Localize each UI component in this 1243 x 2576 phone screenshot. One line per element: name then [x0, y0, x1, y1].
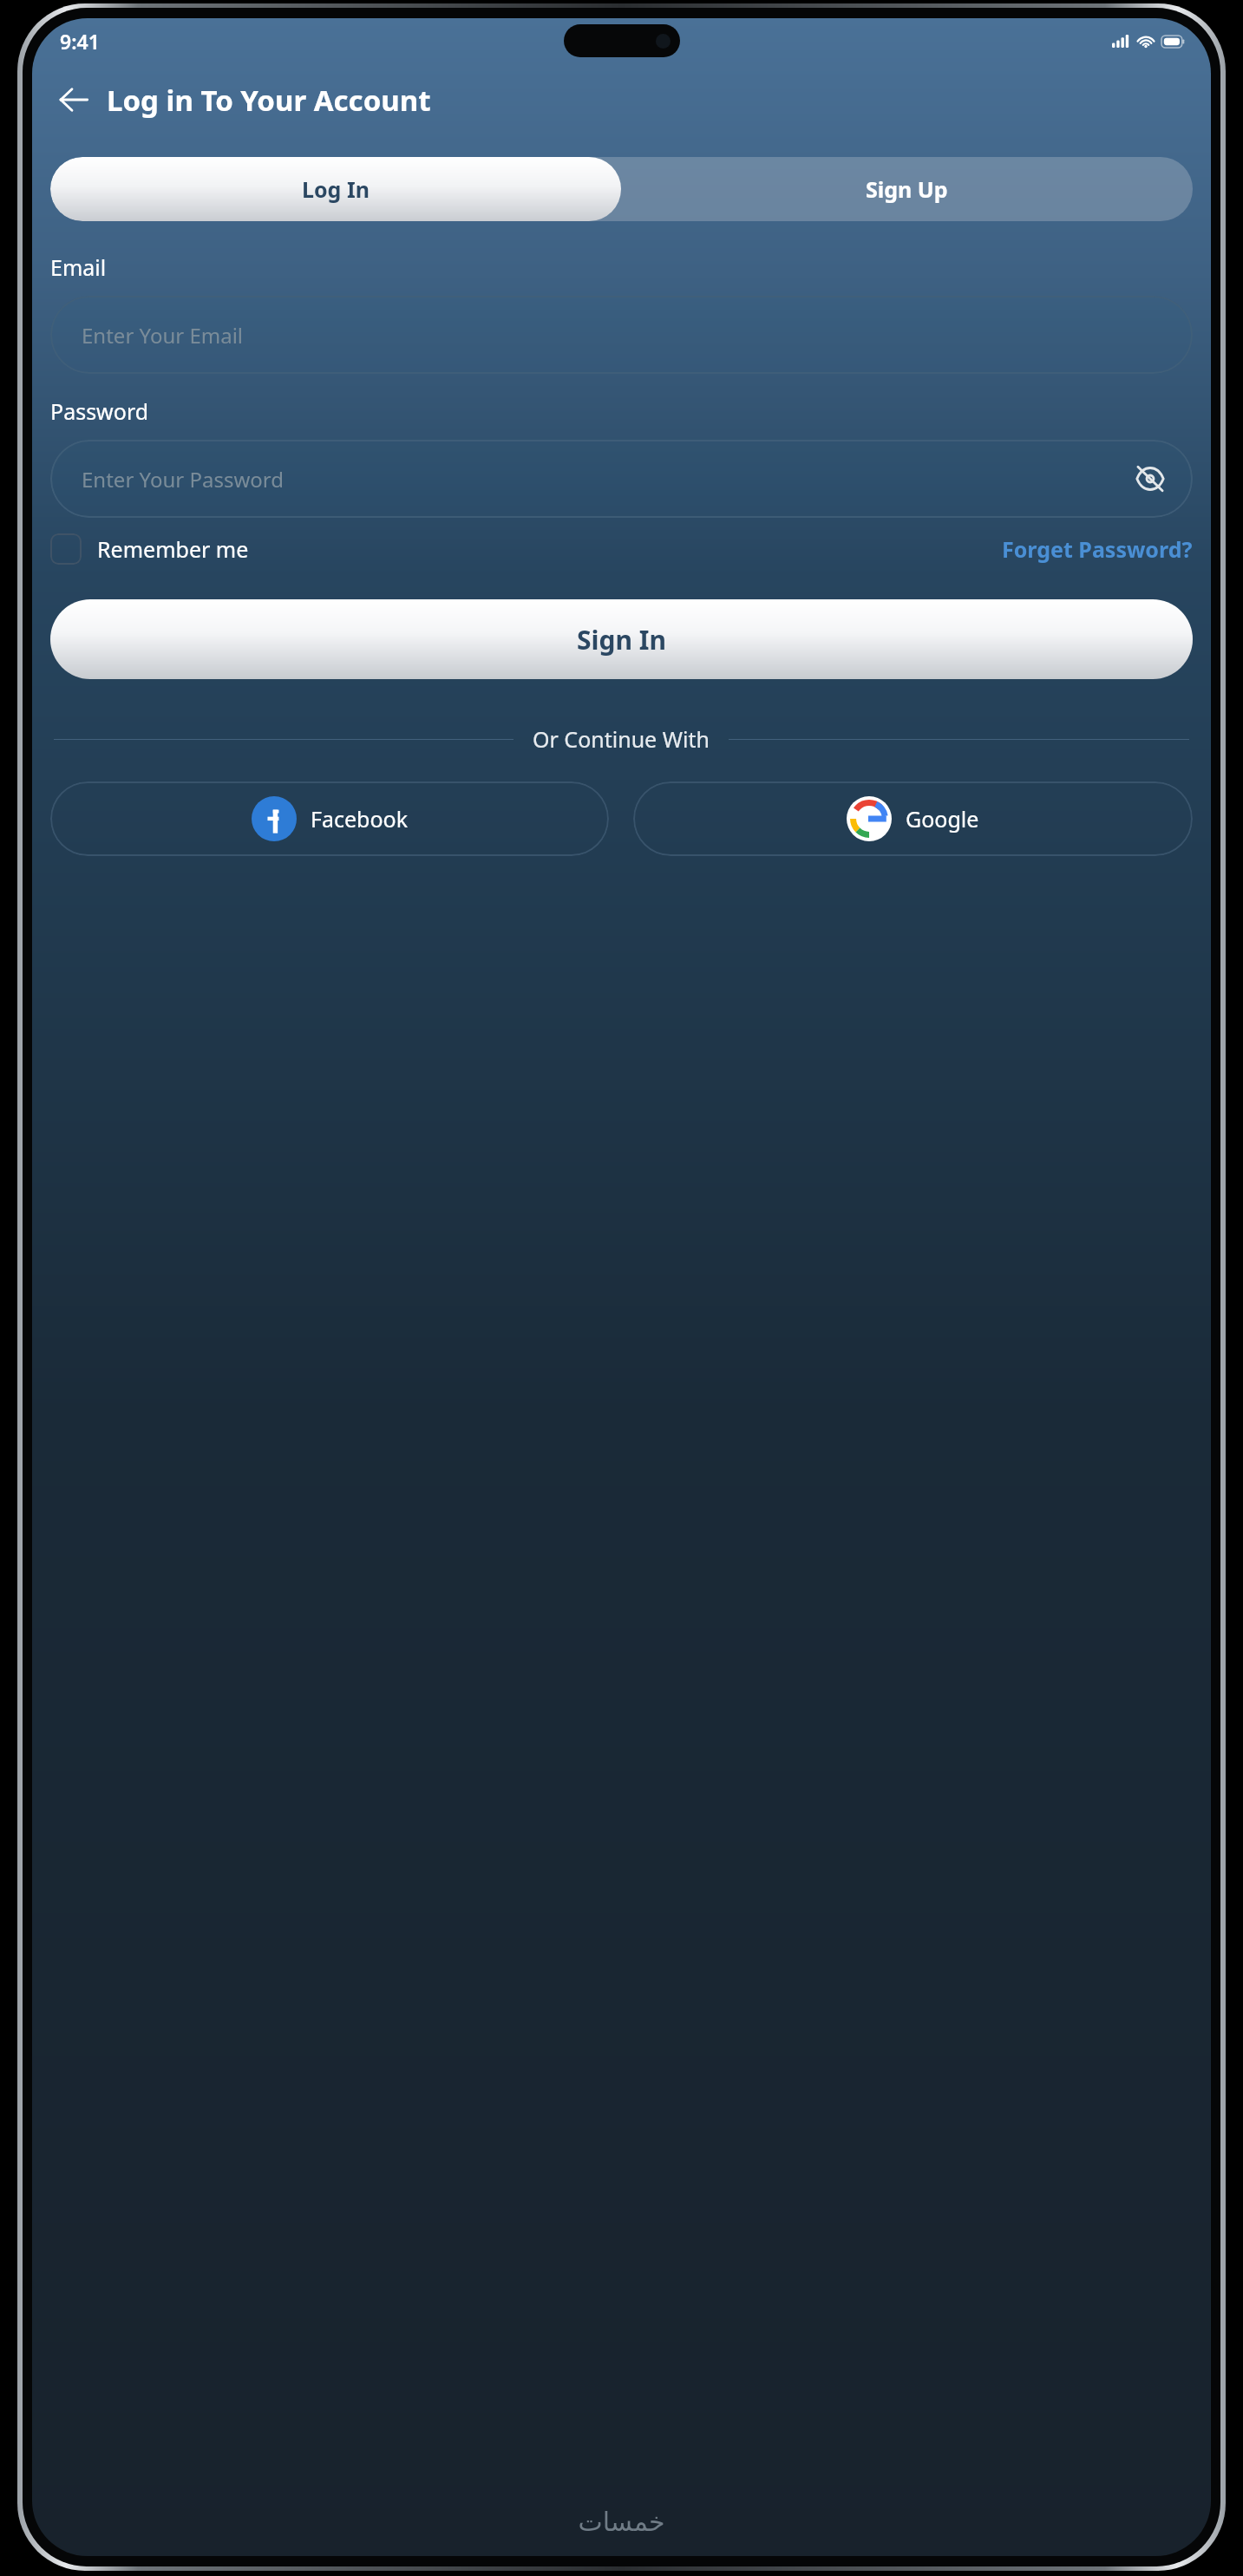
staticText: Remember me [97, 534, 249, 564]
staticText: Log in To Your Account [107, 81, 431, 120]
staticText: Enter Your Password [82, 465, 284, 494]
staticText: Or Continue With [533, 724, 710, 754]
button[interactable]: Sign In [50, 599, 1193, 679]
staticText: Password [50, 396, 149, 426]
button[interactable]: Google [633, 781, 1193, 856]
staticText: Google [906, 804, 979, 834]
staticText: Facebook [311, 804, 409, 834]
staticText: 9:41 [60, 28, 100, 55]
button[interactable]: Sign Up [621, 157, 1193, 221]
button[interactable]: Remember me [50, 533, 249, 565]
button[interactable]: Enter Your Password [50, 440, 1193, 518]
staticText: Email [50, 252, 107, 282]
button[interactable]: Facebook [50, 781, 609, 856]
button[interactable]: Forget Password? [1002, 534, 1193, 564]
staticText: Sign Up [866, 174, 948, 204]
staticText: Forget Password? [1002, 534, 1193, 564]
staticText: Log In [302, 174, 370, 204]
staticText: خمسات [578, 2507, 665, 2537]
staticText: Sign In [577, 622, 666, 657]
button[interactable]: Enter Your Email [50, 296, 1193, 374]
button[interactable]: Back [51, 77, 96, 122]
button[interactable]: Toggle password visibility [1130, 459, 1170, 499]
staticText: Enter Your Email [82, 321, 244, 350]
button[interactable]: Log In [50, 157, 621, 221]
